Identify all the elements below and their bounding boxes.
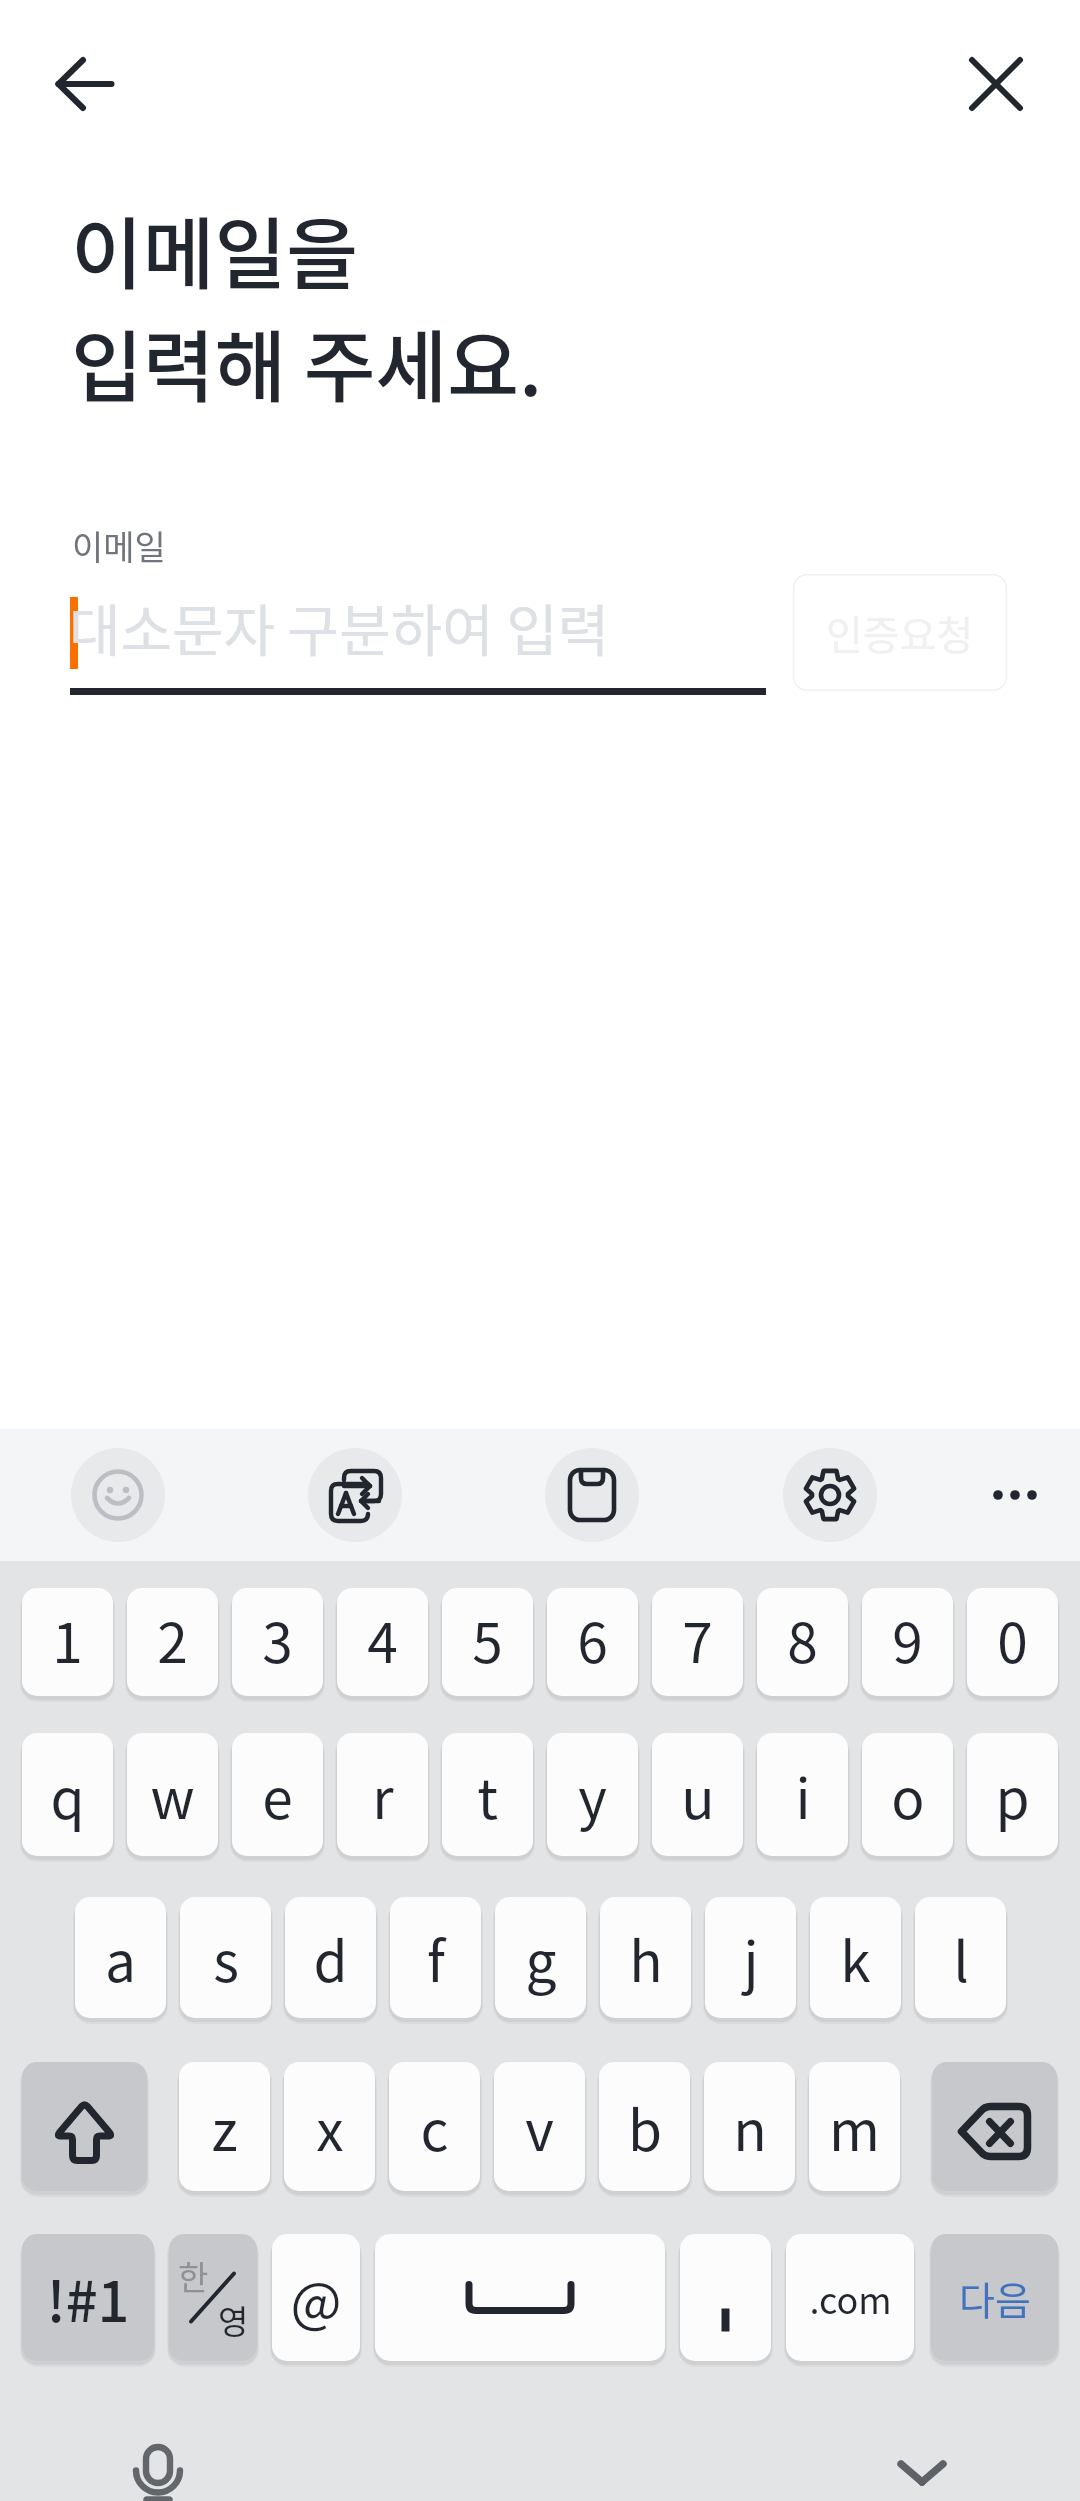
button[interactable]: i <box>757 1733 848 1856</box>
button[interactable]: 2 <box>127 1588 218 1696</box>
staticText: t <box>477 1755 498 1835</box>
staticText: r <box>372 1755 394 1835</box>
staticText: 0 <box>997 1599 1028 1679</box>
staticText: q <box>50 1755 85 1835</box>
button[interactable]: 3 <box>232 1588 323 1696</box>
staticText: f <box>427 1918 445 1998</box>
button[interactable]: Hide keyboard <box>864 2415 980 2501</box>
button[interactable]: p <box>967 1733 1058 1856</box>
button[interactable]: u <box>652 1733 743 1856</box>
button[interactable]: Clipboard <box>534 1437 650 1553</box>
staticText: p <box>995 1755 1030 1835</box>
staticText: 이메일을 <box>71 193 359 306</box>
staticText: x <box>316 2087 344 2167</box>
staticText: o <box>891 1755 925 1835</box>
staticText: d <box>313 1918 348 1998</box>
staticText: 2 <box>157 1599 188 1679</box>
staticText: u <box>681 1755 715 1835</box>
button[interactable]: Translate <box>297 1437 413 1553</box>
button[interactable]: 9 <box>862 1588 953 1696</box>
button[interactable]: !#1 <box>22 2234 154 2361</box>
staticText: j <box>743 1918 759 1998</box>
staticText: l <box>953 1918 969 1998</box>
button[interactable]: Shift <box>22 2062 147 2191</box>
staticText: k <box>840 1918 871 1998</box>
button[interactable]: 인증요청 <box>793 574 1007 691</box>
button[interactable]: f <box>390 1897 481 2018</box>
button[interactable]: a <box>75 1897 166 2018</box>
button[interactable]: b <box>599 2062 690 2191</box>
staticText: 영 <box>218 2296 249 2344</box>
staticText: 6 <box>577 1599 608 1679</box>
staticText: !#1 <box>46 2257 130 2338</box>
staticText: e <box>262 1755 293 1835</box>
staticText: 대소문자 구분하여 입력 <box>69 586 610 667</box>
button[interactable]: 1 <box>22 1588 113 1696</box>
button[interactable]: Space <box>375 2234 665 2361</box>
button[interactable]: c <box>389 2062 480 2191</box>
staticText: g <box>525 1918 557 1998</box>
button[interactable]: z <box>179 2062 270 2191</box>
button[interactable]: Voice input <box>100 2415 216 2501</box>
staticText: h <box>629 1918 663 1998</box>
button[interactable]: Comma <box>680 2234 771 2361</box>
button[interactable]: h <box>600 1897 691 2018</box>
staticText: m <box>829 2087 880 2167</box>
staticText: 4 <box>367 1599 398 1679</box>
staticText: n <box>733 2087 767 2167</box>
staticText: 입력해 주세요. <box>71 306 543 419</box>
button[interactable]: v <box>494 2062 585 2191</box>
staticText: 8 <box>787 1599 818 1679</box>
button[interactable]: Close <box>936 24 1056 144</box>
staticText: 9 <box>892 1599 923 1679</box>
button[interactable]: 7 <box>652 1588 743 1696</box>
button[interactable]: Emoji <box>60 1437 176 1553</box>
button[interactable]: Back <box>25 24 145 144</box>
button[interactable]: g <box>495 1897 586 2018</box>
staticText: w <box>150 1755 195 1835</box>
button[interactable]: Settings <box>772 1437 888 1553</box>
staticText: i <box>795 1755 811 1835</box>
staticText: 이메일 <box>72 521 166 570</box>
button[interactable]: l <box>915 1897 1006 2018</box>
staticText: y <box>578 1755 607 1835</box>
button[interactable]: x <box>284 2062 375 2191</box>
button[interactable]: m <box>809 2062 900 2191</box>
button[interactable]: 8 <box>757 1588 848 1696</box>
button[interactable]: 다음 <box>931 2234 1058 2361</box>
staticText: c <box>420 2087 449 2167</box>
staticText: b <box>628 2087 662 2167</box>
button[interactable]: e <box>232 1733 323 1856</box>
button[interactable]: t <box>442 1733 533 1856</box>
button[interactable]: @ <box>272 2234 360 2361</box>
button[interactable]: r <box>337 1733 428 1856</box>
staticText: s <box>213 1918 239 1998</box>
button[interactable]: 5 <box>442 1588 533 1696</box>
staticText: v <box>525 2087 554 2167</box>
button[interactable]: More options <box>957 1437 1073 1553</box>
staticText: 5 <box>472 1599 503 1679</box>
button[interactable]: n <box>704 2062 795 2191</box>
staticText: 1 <box>52 1599 83 1679</box>
button[interactable]: o <box>862 1733 953 1856</box>
staticText: 한 <box>178 2252 209 2300</box>
button[interactable]: w <box>127 1733 218 1856</box>
button[interactable]: Backspace <box>932 2062 1057 2191</box>
button[interactable]: j <box>705 1897 796 2018</box>
staticText: a <box>105 1918 136 1998</box>
button[interactable]: d <box>285 1897 376 2018</box>
button[interactable]: k <box>810 1897 901 2018</box>
staticText: 3 <box>262 1599 293 1679</box>
staticText: 다음 <box>959 2270 1031 2326</box>
button[interactable]: 4 <box>337 1588 428 1696</box>
button[interactable]: s <box>180 1897 271 2018</box>
button[interactable]: y <box>547 1733 638 1856</box>
staticText: @ <box>290 2259 342 2337</box>
button[interactable]: 0 <box>967 1588 1058 1696</box>
staticText: z <box>211 2087 238 2167</box>
button[interactable]: 6 <box>547 1588 638 1696</box>
button[interactable]: Korean / English <box>169 2234 257 2361</box>
button[interactable]: q <box>22 1733 113 1856</box>
staticText: 인증요청 <box>826 604 974 662</box>
button[interactable]: .com <box>786 2234 914 2361</box>
